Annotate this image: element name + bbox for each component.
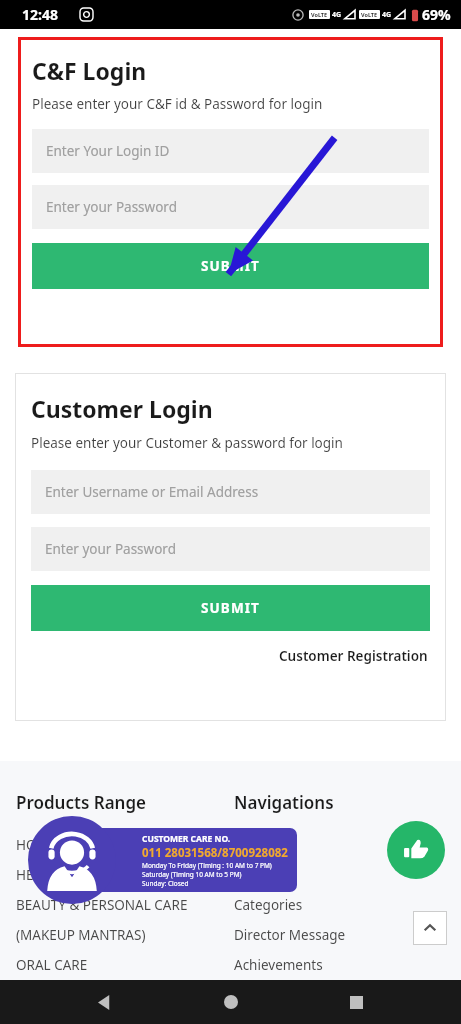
staticText: Sunday: Closed (142, 879, 189, 888)
staticText: Products Range (16, 791, 147, 814)
button[interactable]: Scroll to top (413, 911, 447, 945)
staticText: About Us (234, 836, 293, 854)
staticText: SUBMIT (201, 257, 260, 275)
staticText: 4G (382, 10, 392, 20)
staticText: VoLTE (311, 11, 328, 18)
button[interactable]: Director Message (234, 920, 461, 950)
button[interactable]: Home (211, 982, 251, 1022)
staticText: Saturday (Timing 10 AM to 5 PM) (142, 870, 242, 879)
staticText: HEALTH CARE (16, 866, 104, 884)
staticText: ORAL CARE (16, 956, 88, 974)
staticText: Categories (234, 896, 303, 914)
button[interactable]: Achievements (234, 950, 461, 980)
staticText: Customer Registration (279, 647, 428, 665)
button[interactable]: (MAKEUP MANTRAS) (16, 920, 230, 950)
staticText: Monday To Friday (Timing : 10 AM to 7 PM… (142, 861, 272, 870)
staticText: Enter your Password (46, 198, 177, 216)
staticText: CUSTOMER CARE NO. (142, 833, 231, 845)
staticText: BEAUTY & PERSONAL CARE (16, 896, 188, 914)
staticText: Customer Login (31, 393, 213, 424)
staticText: Enter your Password (45, 540, 176, 558)
staticText: 4G (332, 10, 342, 20)
button[interactable]: HOME CARE (16, 830, 230, 860)
button[interactable]: ORAL CARE (16, 950, 230, 980)
button[interactable]: Enter your Password (31, 527, 430, 571)
button[interactable]: About Us (234, 830, 461, 860)
button[interactable]: HEALTH CARE (16, 860, 230, 890)
staticText: Achievements (234, 956, 323, 974)
staticText: SUBMIT (201, 599, 260, 617)
staticText: 011 28031568/8700928082 (142, 845, 288, 861)
staticText: C&F Login (32, 55, 147, 86)
staticText: HOME CARE (16, 836, 93, 854)
button[interactable]: Categories (234, 890, 461, 920)
button[interactable]: CUSTOMER CARE NO. (28, 816, 321, 904)
staticText: Director Message (234, 926, 346, 944)
button[interactable]: Recent apps (336, 982, 376, 1022)
staticText: Enter Your Login ID (46, 142, 170, 160)
button[interactable]: SUBMIT (31, 585, 430, 631)
button[interactable]: Like (387, 821, 445, 879)
button[interactable]: Enter your Password (32, 185, 429, 229)
staticText: Our Team (234, 866, 297, 884)
staticText: 69% (422, 5, 451, 24)
staticText: Enter Username or Email Address (45, 483, 259, 501)
staticText: VoLTE (361, 11, 378, 18)
button[interactable]: Back (85, 982, 125, 1022)
button[interactable]: BEAUTY & PERSONAL CARE (16, 890, 230, 920)
button[interactable]: Customer Registration (277, 645, 430, 667)
button[interactable]: SUBMIT (32, 243, 429, 289)
staticText: Please enter your C&F id & Password for … (32, 95, 323, 113)
button[interactable]: Our Team (234, 860, 461, 890)
staticText: (MAKEUP MANTRAS) (16, 926, 146, 944)
button[interactable]: Enter Your Login ID (32, 129, 429, 173)
staticText: Navigations (234, 791, 334, 814)
staticText: Please enter your Customer & password fo… (31, 434, 343, 452)
staticText: 12:48 (22, 5, 58, 24)
button[interactable]: Enter Username or Email Address (31, 470, 430, 514)
